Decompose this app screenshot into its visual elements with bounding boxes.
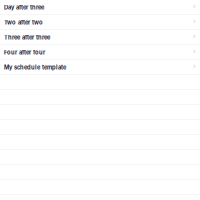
- button[interactable]: Two after two: [0, 15, 200, 29]
- staticText: Three after three: [4, 34, 50, 41]
- staticText: Two after two: [4, 19, 43, 26]
- button[interactable]: Three after three: [0, 30, 200, 44]
- staticText: Four after four: [4, 49, 45, 56]
- button[interactable]: Day after three: [0, 0, 200, 14]
- staticText: Day after three: [4, 4, 44, 11]
- button[interactable]: Four after four: [0, 45, 200, 59]
- button[interactable]: My schedule template: [0, 60, 200, 74]
- staticText: My schedule template: [4, 64, 66, 71]
